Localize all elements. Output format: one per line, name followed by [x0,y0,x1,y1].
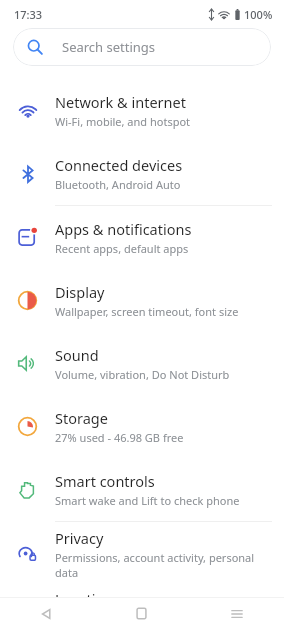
staticText: Sound [55,345,99,365]
staticText: Display [55,282,105,302]
button[interactable]: Recent apps [189,597,284,630]
button[interactable]: Apps and notifications [0,206,284,269]
other: Connected devices [18,164,38,184]
button[interactable]: Storage [0,395,284,458]
staticText: Permissions, account activity, personal … [55,550,274,580]
button[interactable]: Location [0,585,284,630]
staticText: 27% used - 46.98 GB free [55,430,184,445]
staticText: Network & internet [55,92,186,112]
staticText: Wi-Fi, mobile, and hotspot [55,114,191,129]
button[interactable]: Connected devices [0,142,284,205]
staticText: On - 3 apps have access to location [55,611,236,626]
staticText: Connected devices [55,155,183,175]
button[interactable]: Home [94,597,189,630]
other: Smart controls [17,479,38,500]
staticText: 17:33 [14,7,43,22]
other: Privacy [17,543,38,564]
other: Network and internet [17,100,39,122]
staticText: Privacy [55,528,104,548]
staticText: Apps & notifications [55,219,192,239]
staticText: Smart controls [55,471,155,491]
staticText: Search settings [62,38,156,56]
other: Storage [17,416,38,437]
staticText: Recent apps, default apps [55,241,189,256]
button[interactable]: Display [0,269,284,332]
button[interactable]: Back [0,597,94,630]
staticText: Storage [55,408,108,428]
staticText: Smart wake and Lift to check phone [55,493,240,508]
other: Apps and notifications [17,227,38,248]
button[interactable]: Privacy [0,522,284,585]
other: Display [17,290,38,311]
staticText: Wallpaper, screen timeout, font size [55,304,239,319]
staticText: 100% [244,7,273,22]
other: Sound [17,353,38,374]
staticText: Bluetooth, Android Auto [55,177,181,192]
button[interactable]: Search settings [13,28,271,66]
staticText: Volume, vibration, Do Not Disturb [55,367,230,382]
staticText: Location [55,589,114,609]
button[interactable]: Sound [0,332,284,395]
button[interactable]: Network and internet [0,79,284,142]
button[interactable]: Smart controls [0,458,284,521]
